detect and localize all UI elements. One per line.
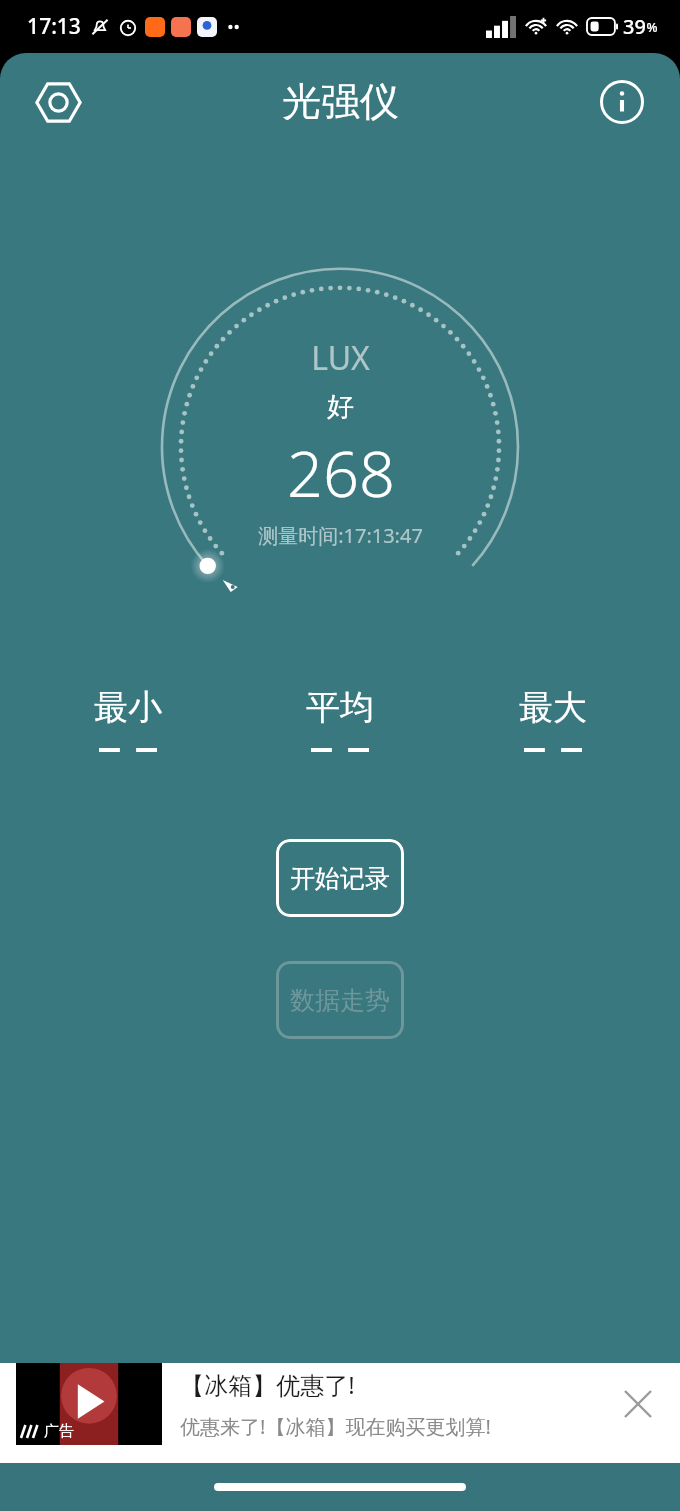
staticText: 【冰箱】优惠了! (180, 1368, 355, 1401)
button[interactable]: 最小 (43, 682, 213, 761)
button[interactable]: 开始记录 (276, 839, 404, 917)
staticText: LUX (311, 336, 370, 380)
staticText: 平均 (306, 686, 374, 729)
staticText: 测量时间:17:13:47 (258, 522, 423, 549)
staticText: 最大 (519, 686, 587, 729)
staticText: 39 (623, 13, 646, 40)
button[interactable]: 最大 (468, 682, 638, 761)
staticText: 开始记录 (290, 863, 390, 894)
staticText: 优惠来了!【冰箱】现在购买更划算! (180, 1413, 491, 1440)
staticText: 光强仪 (282, 77, 399, 126)
button[interactable]: 广告 (0, 1363, 680, 1463)
button[interactable]: 数据走势 (276, 961, 404, 1039)
staticText: % (646, 18, 658, 36)
button[interactable]: Close ad (612, 1378, 664, 1430)
button[interactable]: About (588, 68, 656, 136)
button[interactable]: Settings (24, 68, 92, 136)
staticText: 好 (327, 390, 354, 424)
staticText: 最小 (94, 686, 162, 729)
button[interactable]: 平均 (255, 682, 425, 761)
staticText: 数据走势 (290, 985, 390, 1016)
staticText: 17:13 (27, 12, 81, 41)
staticText: 广告 (44, 1422, 74, 1441)
staticText: 268 (287, 430, 395, 516)
